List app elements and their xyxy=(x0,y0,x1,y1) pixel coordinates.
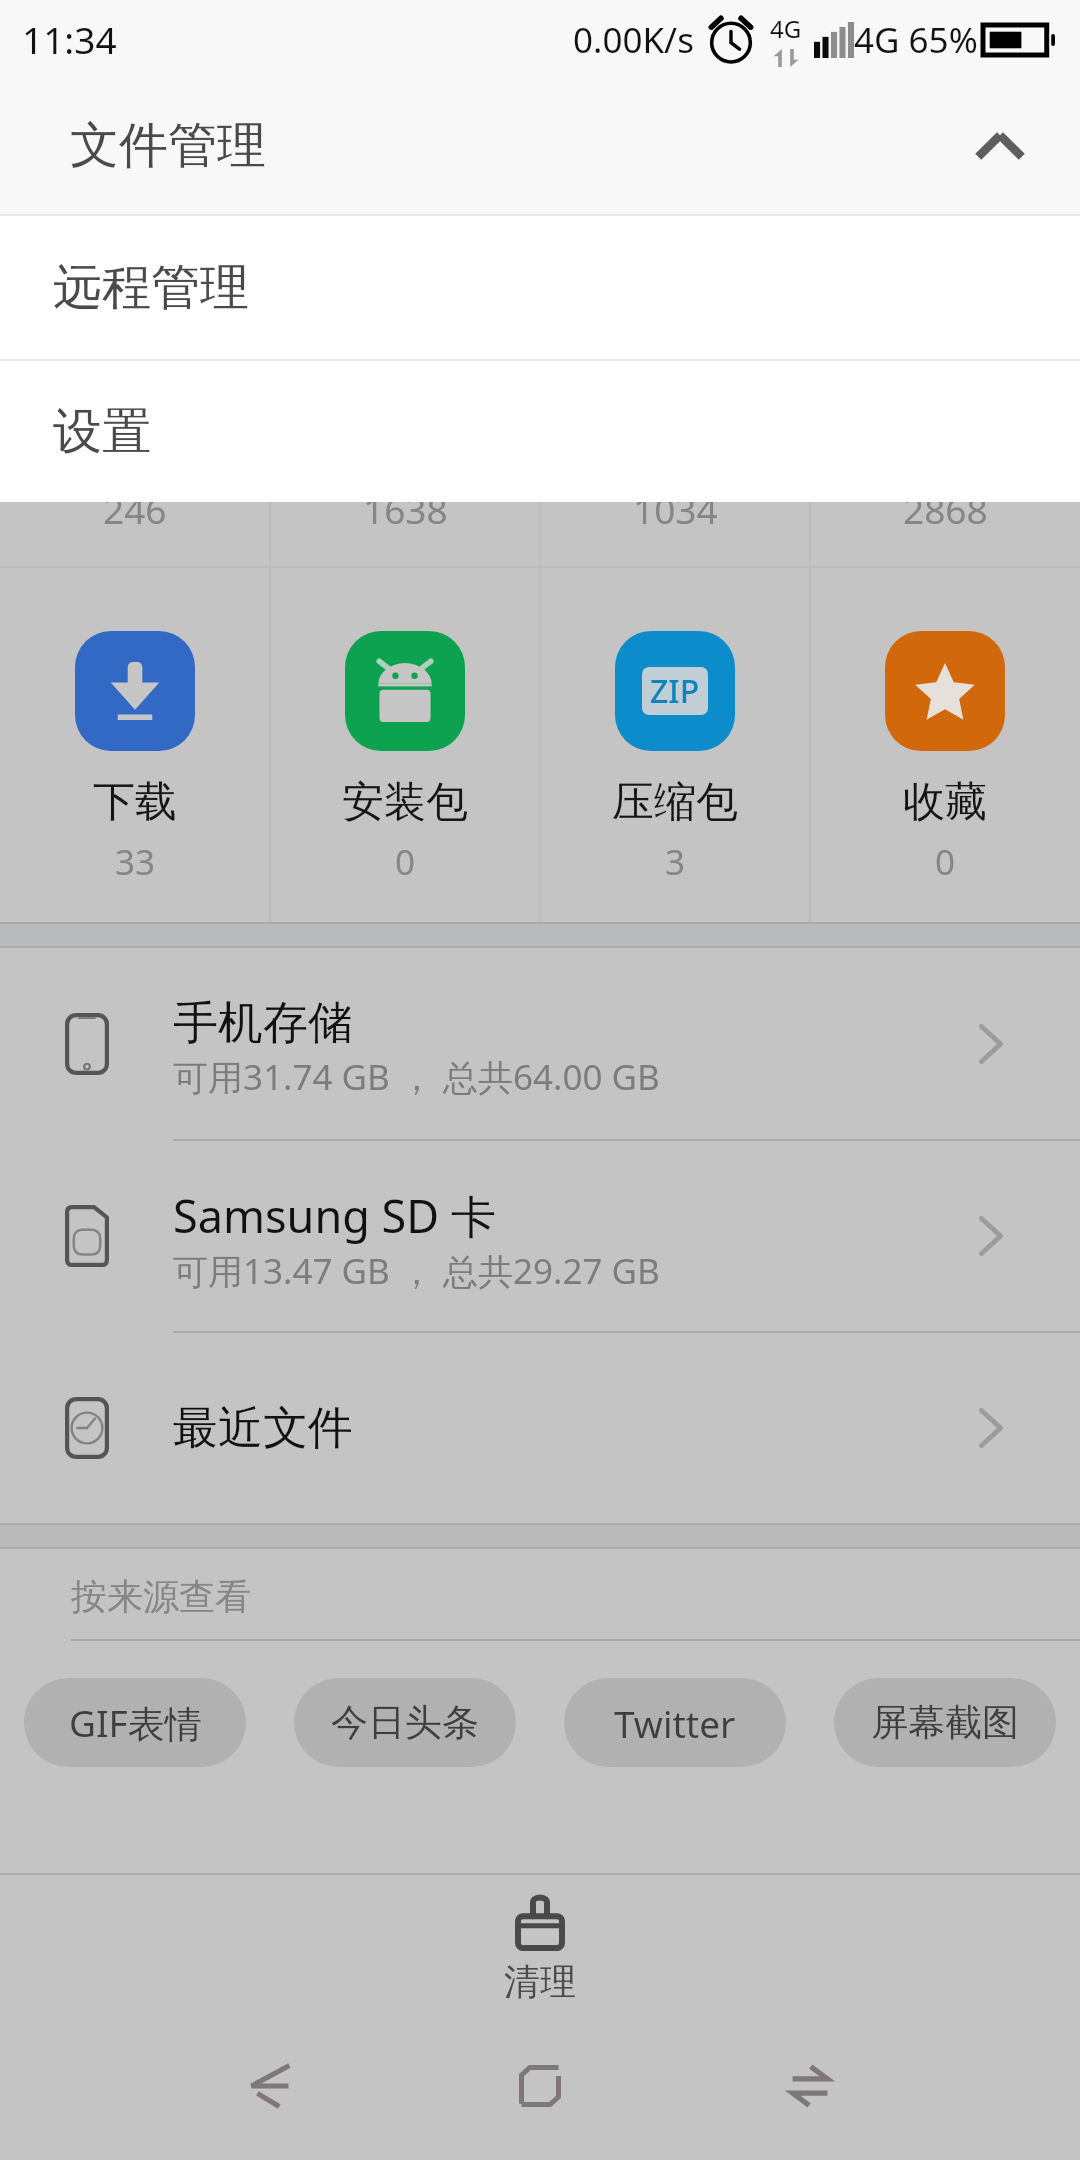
staticText: 2868 xyxy=(903,484,988,534)
button[interactable]: Switch apps xyxy=(675,2033,945,2138)
staticText: 安装包 xyxy=(342,776,468,829)
staticText: Samsung SD 卡 xyxy=(173,1185,496,1246)
staticText: 收藏 xyxy=(903,776,987,829)
button[interactable]: 最近文件 xyxy=(0,1333,1080,1523)
staticText: 3 xyxy=(665,838,686,886)
staticText: 4G xyxy=(770,12,802,45)
staticText: GIF表情 xyxy=(69,1697,202,1748)
button[interactable]: 远程管理 xyxy=(0,216,1080,359)
button[interactable]: 文件管理 xyxy=(0,78,1080,214)
staticText: 246 xyxy=(103,484,167,534)
button[interactable]: Samsung SD 卡 xyxy=(0,1141,1080,1331)
staticText: 手机存储 xyxy=(173,995,353,1052)
staticText: 最近文件 xyxy=(173,1400,353,1457)
staticText: 文件管理 xyxy=(70,115,266,177)
staticText: 按来源查看 xyxy=(71,1574,251,1619)
button[interactable]: 安装包 xyxy=(270,568,540,886)
staticText: 屏幕截图 xyxy=(871,1699,1019,1746)
button[interactable]: 屏幕截图 xyxy=(834,1678,1056,1767)
staticText: 下载 xyxy=(93,776,177,829)
button[interactable]: Collapse menu xyxy=(958,104,1042,188)
button[interactable]: Home xyxy=(405,2033,675,2138)
staticText: 1638 xyxy=(363,484,448,534)
button[interactable]: GIF表情 xyxy=(24,1678,246,1767)
button[interactable]: 今日头条 xyxy=(294,1678,516,1767)
staticText: 清理 xyxy=(504,1959,576,2004)
button[interactable]: 设置 xyxy=(0,361,1080,502)
staticText: 0.00K/s xyxy=(573,16,694,64)
button[interactable]: 清理 xyxy=(0,1875,1080,2033)
staticText: 今日头条 xyxy=(331,1699,479,1746)
staticText: 33 xyxy=(115,838,156,886)
staticText: 压缩包 xyxy=(612,776,738,829)
staticText: 远程管理 xyxy=(53,257,249,319)
staticText: 0 xyxy=(395,838,416,886)
staticText: 可用31.74 GB ， 总共64.00 GB xyxy=(173,1053,660,1101)
button[interactable]: Twitter xyxy=(564,1678,786,1767)
button[interactable]: 手机存储 xyxy=(0,948,1080,1139)
staticText: ZIP xyxy=(650,669,700,713)
staticText: Twitter xyxy=(614,1698,736,1748)
button[interactable]: 收藏 xyxy=(810,568,1080,886)
staticText: 可用13.47 GB ， 总共29.27 GB xyxy=(173,1247,660,1295)
button[interactable]: ZIP xyxy=(540,568,810,886)
staticText: 0 xyxy=(935,838,956,886)
staticText: 设置 xyxy=(53,401,151,463)
button[interactable]: Back xyxy=(135,2033,405,2138)
staticText: 4G 65% xyxy=(854,16,978,64)
staticText: 1034 xyxy=(633,484,718,534)
staticText: 11:34 xyxy=(22,14,117,64)
button[interactable]: 下载 xyxy=(0,568,270,886)
